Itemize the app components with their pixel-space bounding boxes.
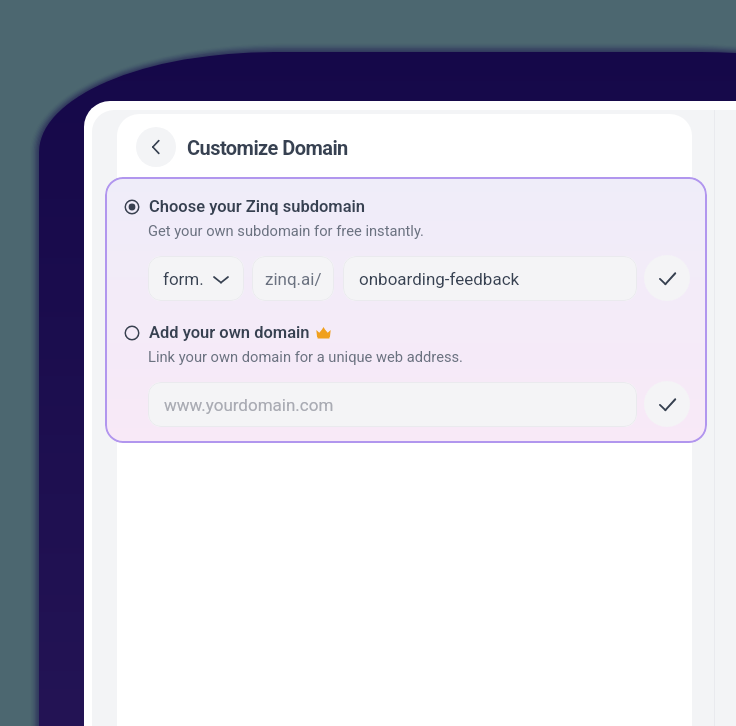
staticText: www.yourdomain.com <box>164 395 334 415</box>
button[interactable]: www.yourdomain.com <box>148 382 637 427</box>
staticText: Choose your Zinq subdomain <box>149 197 365 216</box>
staticText: form. <box>163 269 204 289</box>
button[interactable]: form. <box>148 256 244 301</box>
button[interactable]: Back <box>136 127 176 167</box>
button[interactable]: Choose your Zinq subdomain <box>124 197 707 216</box>
button[interactable]: Add your own domain <box>124 323 707 342</box>
staticText: Link your own domain for a unique web ad… <box>148 348 463 365</box>
staticText: Get your own subdomain for free instantl… <box>148 222 424 239</box>
staticText: Add your own domain <box>149 323 310 342</box>
button[interactable]: Confirm <box>644 381 690 427</box>
staticText: onboarding-feedback <box>359 269 520 289</box>
staticText: zinq.ai/ <box>265 269 322 289</box>
staticText: Customize Domain <box>187 136 348 159</box>
button[interactable]: Confirm <box>644 255 690 301</box>
button[interactable]: onboarding-feedback <box>343 256 637 301</box>
